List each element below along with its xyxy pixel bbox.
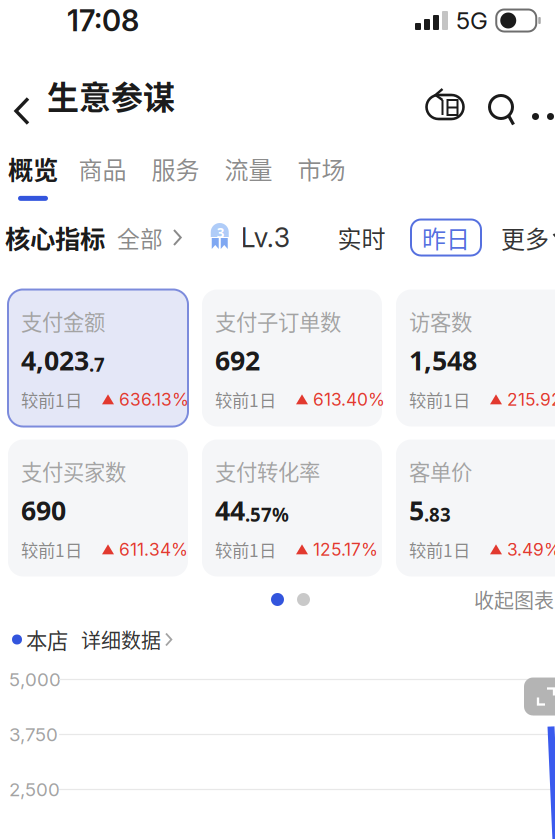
button[interactable]: 访客数: [396, 289, 555, 426]
button[interactable]: 支付子订单数: [202, 289, 382, 426]
button[interactable]: 支付转化率: [202, 439, 382, 576]
button[interactable]: 支付买家数: [8, 439, 188, 576]
button[interactable]: 市场: [285, 132, 358, 206]
staticText: 613.40%: [313, 389, 385, 410]
button[interactable]: 3: [207, 215, 290, 259]
staticText: 692: [215, 342, 260, 378]
button[interactable]: 收起图表: [474, 585, 554, 614]
staticText: 215.92%: [507, 389, 555, 410]
staticText: 支付子订单数: [215, 305, 341, 336]
staticText: 636.13%: [119, 389, 189, 410]
staticText: 3: [217, 224, 225, 242]
button[interactable]: 生意参谋: [44, 51, 175, 132]
staticText: 125.17%: [313, 539, 378, 560]
button[interactable]: 全部: [117, 215, 183, 259]
staticText: 生意参谋: [47, 72, 175, 118]
staticText: Lv.3: [241, 221, 290, 254]
staticText: 商品: [78, 151, 126, 186]
staticText: 4,023: [21, 342, 89, 378]
staticText: 昨日: [422, 220, 470, 255]
button[interactable]: 概览: [0, 132, 66, 206]
button[interactable]: 实时: [325, 217, 398, 257]
staticText: 较前1日: [21, 537, 82, 562]
staticText: 611.34%: [119, 539, 188, 560]
staticText: 收起图表: [474, 585, 554, 614]
button[interactable]: 客单价: [396, 439, 555, 576]
button[interactable]: 搜索: [483, 45, 519, 138]
button[interactable]: 更多: [532, 39, 555, 145]
staticText: 较前1日: [21, 387, 82, 412]
staticText: .7: [89, 352, 105, 377]
staticText: 概览: [8, 150, 58, 187]
button[interactable]: 更多: [501, 217, 555, 257]
staticText: 支付转化率: [215, 455, 320, 486]
staticText: 1,548: [409, 342, 477, 378]
staticText: 较前1日: [215, 537, 276, 562]
button[interactable]: 昨日: [411, 219, 481, 255]
staticText: 支付买家数: [21, 455, 126, 486]
staticText: 更多: [501, 220, 549, 255]
staticText: 较前1日: [409, 537, 470, 562]
staticText: 5,000: [9, 668, 61, 691]
staticText: 流量: [224, 151, 272, 186]
staticText: .57%: [245, 502, 289, 527]
button[interactable]: 回到旧版: [424, 46, 474, 138]
staticText: .83: [424, 502, 451, 527]
staticText: 客单价: [409, 455, 472, 486]
staticText: 服务: [151, 151, 199, 186]
staticText: 详细数据: [81, 625, 161, 654]
button[interactable]: 流量: [212, 132, 285, 206]
button[interactable]: 商品: [66, 132, 139, 206]
staticText: 5G: [456, 6, 488, 35]
staticText: 2,500: [9, 778, 60, 801]
staticText: 市场: [297, 151, 345, 186]
staticText: 17:08: [67, 3, 139, 38]
staticText: 实时: [337, 220, 385, 255]
staticText: 5: [409, 492, 424, 528]
button[interactable]: 服务: [139, 132, 212, 206]
staticText: 访客数: [409, 305, 472, 336]
staticText: 全部: [117, 221, 163, 254]
button[interactable]: 支付金额: [8, 289, 188, 426]
staticText: 3.49%: [507, 539, 555, 560]
staticText: 较前1日: [215, 387, 276, 412]
staticText: 3,750: [9, 723, 58, 746]
button[interactable]: 全屏: [524, 677, 555, 715]
staticText: 支付金额: [21, 305, 105, 336]
button[interactable]: 返回: [0, 44, 44, 139]
staticText: 本店: [26, 624, 68, 655]
staticText: 44: [215, 492, 245, 528]
staticText: 690: [21, 492, 66, 528]
button[interactable]: 详细数据: [81, 625, 173, 654]
staticText: 核心指标: [5, 219, 105, 256]
staticText: 较前1日: [409, 387, 470, 412]
